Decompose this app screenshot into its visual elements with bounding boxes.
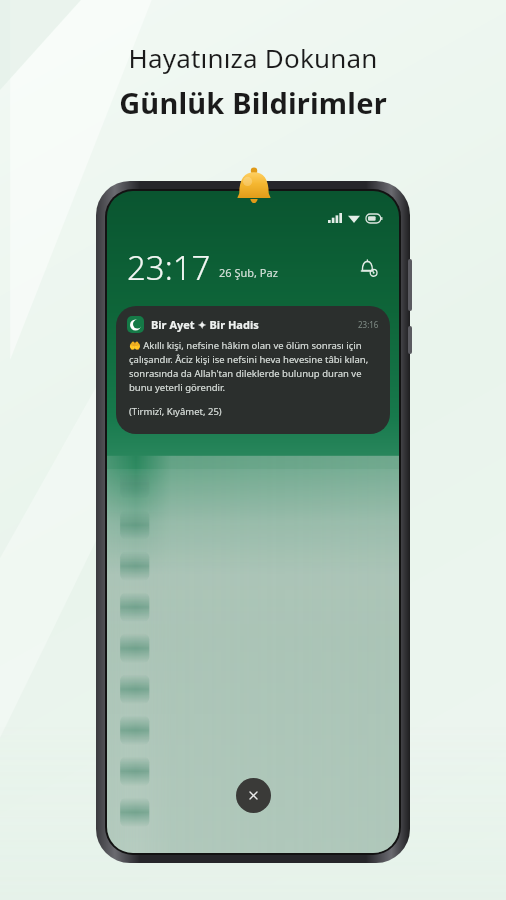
staticText: Hayatınıza Dokunan	[128, 40, 378, 75]
button[interactable]: Clear all notifications	[236, 778, 271, 813]
button[interactable]: Bir Ayet ✦ Bir Hadis	[116, 306, 390, 434]
staticText: 23:16	[358, 319, 379, 330]
staticText: (Tirmizî, Kıyâmet, 25)	[129, 405, 222, 418]
staticText: 23:17	[127, 245, 211, 290]
staticText: Bir Ayet ✦ Bir Hadis	[151, 317, 259, 332]
staticText: Günlük Bildirimler	[119, 83, 387, 122]
staticText: 🤲 Akıllı kişi, nefsine hâkim olan ve ölü…	[129, 339, 375, 394]
button[interactable]: Notification settings	[355, 255, 381, 281]
staticText: 26 Şub, Paz	[219, 265, 278, 280]
